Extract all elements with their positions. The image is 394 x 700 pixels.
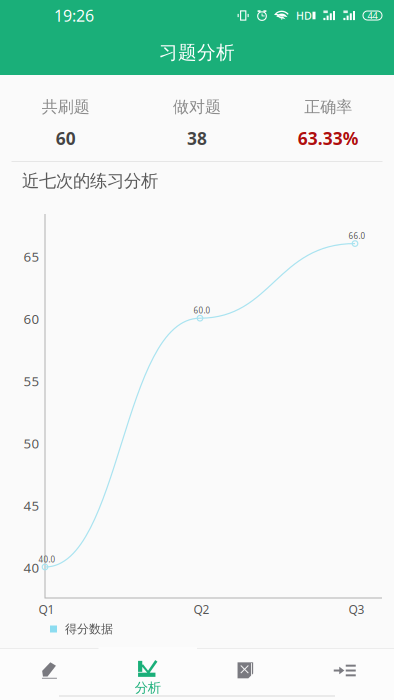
staticText: 65	[23, 248, 39, 265]
staticText: 40	[23, 559, 39, 576]
staticText: 55	[23, 372, 39, 390]
staticText: 40.0	[38, 554, 55, 565]
staticText: 分析	[135, 680, 161, 696]
staticText: 44	[367, 9, 377, 22]
staticText: 做对题	[173, 97, 221, 117]
staticText: 60.0	[193, 305, 210, 316]
staticText: 近七次的练习分析	[22, 170, 158, 192]
staticText: Q3	[348, 601, 364, 617]
staticText: 66.0	[348, 231, 365, 241]
button[interactable]: 分析	[98, 649, 197, 694]
button[interactable]: 错题本	[197, 649, 295, 694]
staticText: 得分数据	[65, 622, 113, 636]
staticText: Q1	[38, 601, 54, 617]
staticText: 63.33%	[298, 127, 359, 150]
staticText: 习题分析	[159, 41, 235, 64]
staticText: HD	[296, 8, 312, 23]
button[interactable]: 更多	[295, 649, 394, 694]
staticText: 60	[23, 310, 39, 328]
staticText: 正确率	[304, 97, 352, 117]
button[interactable]: 做题	[0, 649, 98, 694]
staticText: 19:26	[54, 5, 94, 26]
staticText: 共刷题	[42, 97, 90, 117]
staticText: 50	[23, 434, 39, 452]
staticText: 38	[187, 127, 207, 150]
staticText: 45	[23, 497, 39, 514]
staticText: 60	[56, 127, 76, 150]
staticText: Q2	[193, 601, 209, 617]
